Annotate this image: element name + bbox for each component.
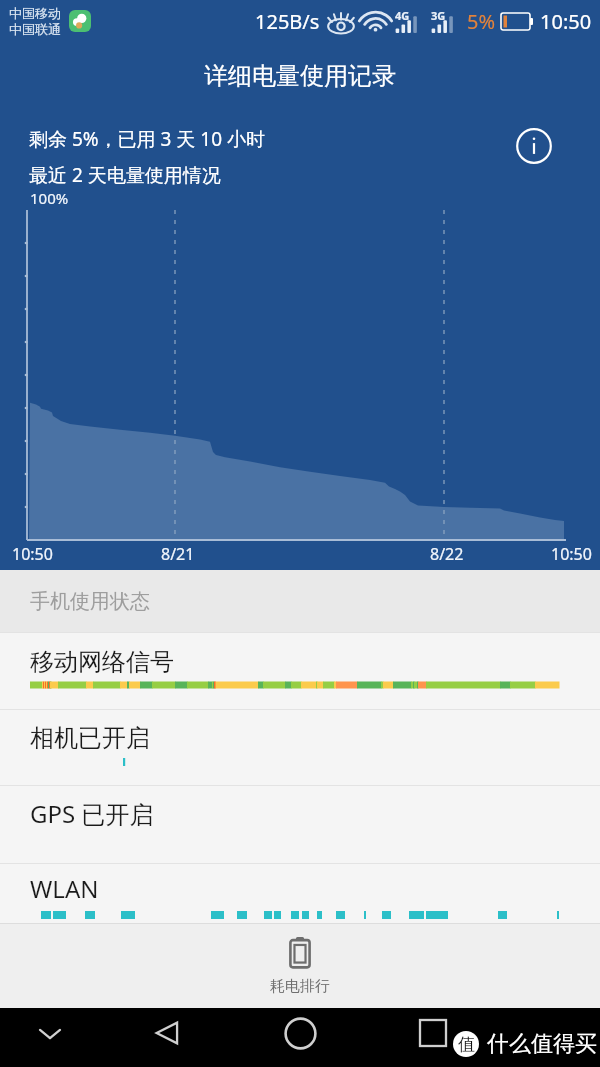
staticText: 什么值得买 xyxy=(487,1030,597,1058)
staticText: 8/21 xyxy=(161,543,195,565)
staticText: 10:50 xyxy=(551,543,592,565)
staticText: 耗电排行 xyxy=(270,977,330,996)
staticText: 剩余 5%，已用 3 天 10 小时 xyxy=(29,126,265,152)
staticText: GPS 已开启 xyxy=(30,797,154,830)
button[interactable]: Back xyxy=(142,1008,192,1058)
staticText: 值 xyxy=(458,1034,475,1055)
button[interactable]: Home xyxy=(275,1008,325,1058)
button[interactable]: 相机已开启 xyxy=(0,709,600,785)
staticText: WLAN xyxy=(30,872,99,905)
staticText: 中国联通 xyxy=(9,21,61,37)
staticText: 详细电量使用记录 xyxy=(204,61,396,91)
button[interactable]: WLAN xyxy=(0,863,600,923)
staticText: 5% xyxy=(467,8,496,35)
button[interactable]: Info xyxy=(516,128,552,164)
staticText: 最近 2 天电量使用情况 xyxy=(29,162,221,188)
button[interactable]: GPS 已开启 xyxy=(0,785,600,863)
button[interactable]: 耗电排行 xyxy=(0,924,600,1008)
staticText: 手机使用状态 xyxy=(30,589,150,614)
staticText: 3G xyxy=(431,8,446,23)
button[interactable]: 移动网络信号 xyxy=(0,632,600,709)
button[interactable]: Hide navigation bar xyxy=(25,1008,75,1058)
staticText: 相机已开启 xyxy=(30,723,150,753)
staticText: 10:50 xyxy=(540,8,592,35)
staticText: 10:50 xyxy=(12,543,53,565)
staticText: 中国移动 xyxy=(9,5,61,21)
staticText: 125B/s xyxy=(255,8,320,35)
staticText: 8/22 xyxy=(430,543,464,565)
staticText: 100% xyxy=(30,188,69,208)
staticText: 4G xyxy=(395,8,410,23)
button[interactable]: Recent apps xyxy=(408,1008,458,1058)
staticText: 移动网络信号 xyxy=(30,647,174,677)
